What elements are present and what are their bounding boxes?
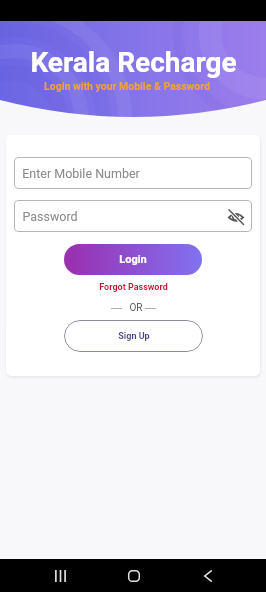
staticText: OR xyxy=(122,302,145,314)
button[interactable]: Recents xyxy=(44,559,76,592)
staticText: Kerala Recharge xyxy=(30,46,237,79)
button[interactable]: Back xyxy=(192,559,224,592)
staticText: Password xyxy=(22,209,78,224)
staticText: Enter Mobile Number xyxy=(22,166,140,181)
button[interactable]: Password xyxy=(14,200,252,232)
button[interactable]: Forgot Password xyxy=(99,282,168,293)
button[interactable]: Login xyxy=(64,244,202,275)
button[interactable]: Enter Mobile Number xyxy=(14,157,252,189)
button[interactable]: Toggle password visibility xyxy=(228,209,244,225)
staticText: Sign Up xyxy=(118,331,150,342)
button[interactable]: Sign Up xyxy=(64,320,203,352)
staticText: Login with your Mobile & Password xyxy=(44,80,210,92)
staticText: Login xyxy=(119,253,147,266)
button[interactable]: Home xyxy=(118,559,150,592)
